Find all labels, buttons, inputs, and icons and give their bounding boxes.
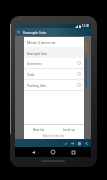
staticText: New list [33,128,45,132]
button[interactable]: Home [49,148,57,156]
staticText: Todo [27,72,35,76]
button[interactable]: Recent apps [69,148,77,156]
button[interactable]: New list [24,125,54,134]
button[interactable]: Groceries [24,58,84,68]
button[interactable]: Move [69,139,76,147]
button[interactable]: Back [29,148,37,156]
button[interactable]: Done [62,139,69,147]
button[interactable]: Level up [54,125,84,134]
staticText: Move 2 items to [27,40,56,45]
button[interactable]: Example lists [24,47,84,58]
button[interactable]: Navigate up [15,28,23,36]
staticText: Packing lists [27,83,47,87]
staticText: Move to this list [43,134,65,138]
button[interactable]: Todo [24,69,84,79]
staticText: Level up [63,128,76,132]
staticText: Example lists [27,51,48,55]
button[interactable]: Share [83,139,90,147]
staticText: 12:30 [82,24,90,28]
button[interactable]: Packing lists [24,80,84,90]
button[interactable]: Delete [76,139,83,147]
staticText: Groceries [27,61,42,65]
staticText: Example lists [23,30,47,35]
